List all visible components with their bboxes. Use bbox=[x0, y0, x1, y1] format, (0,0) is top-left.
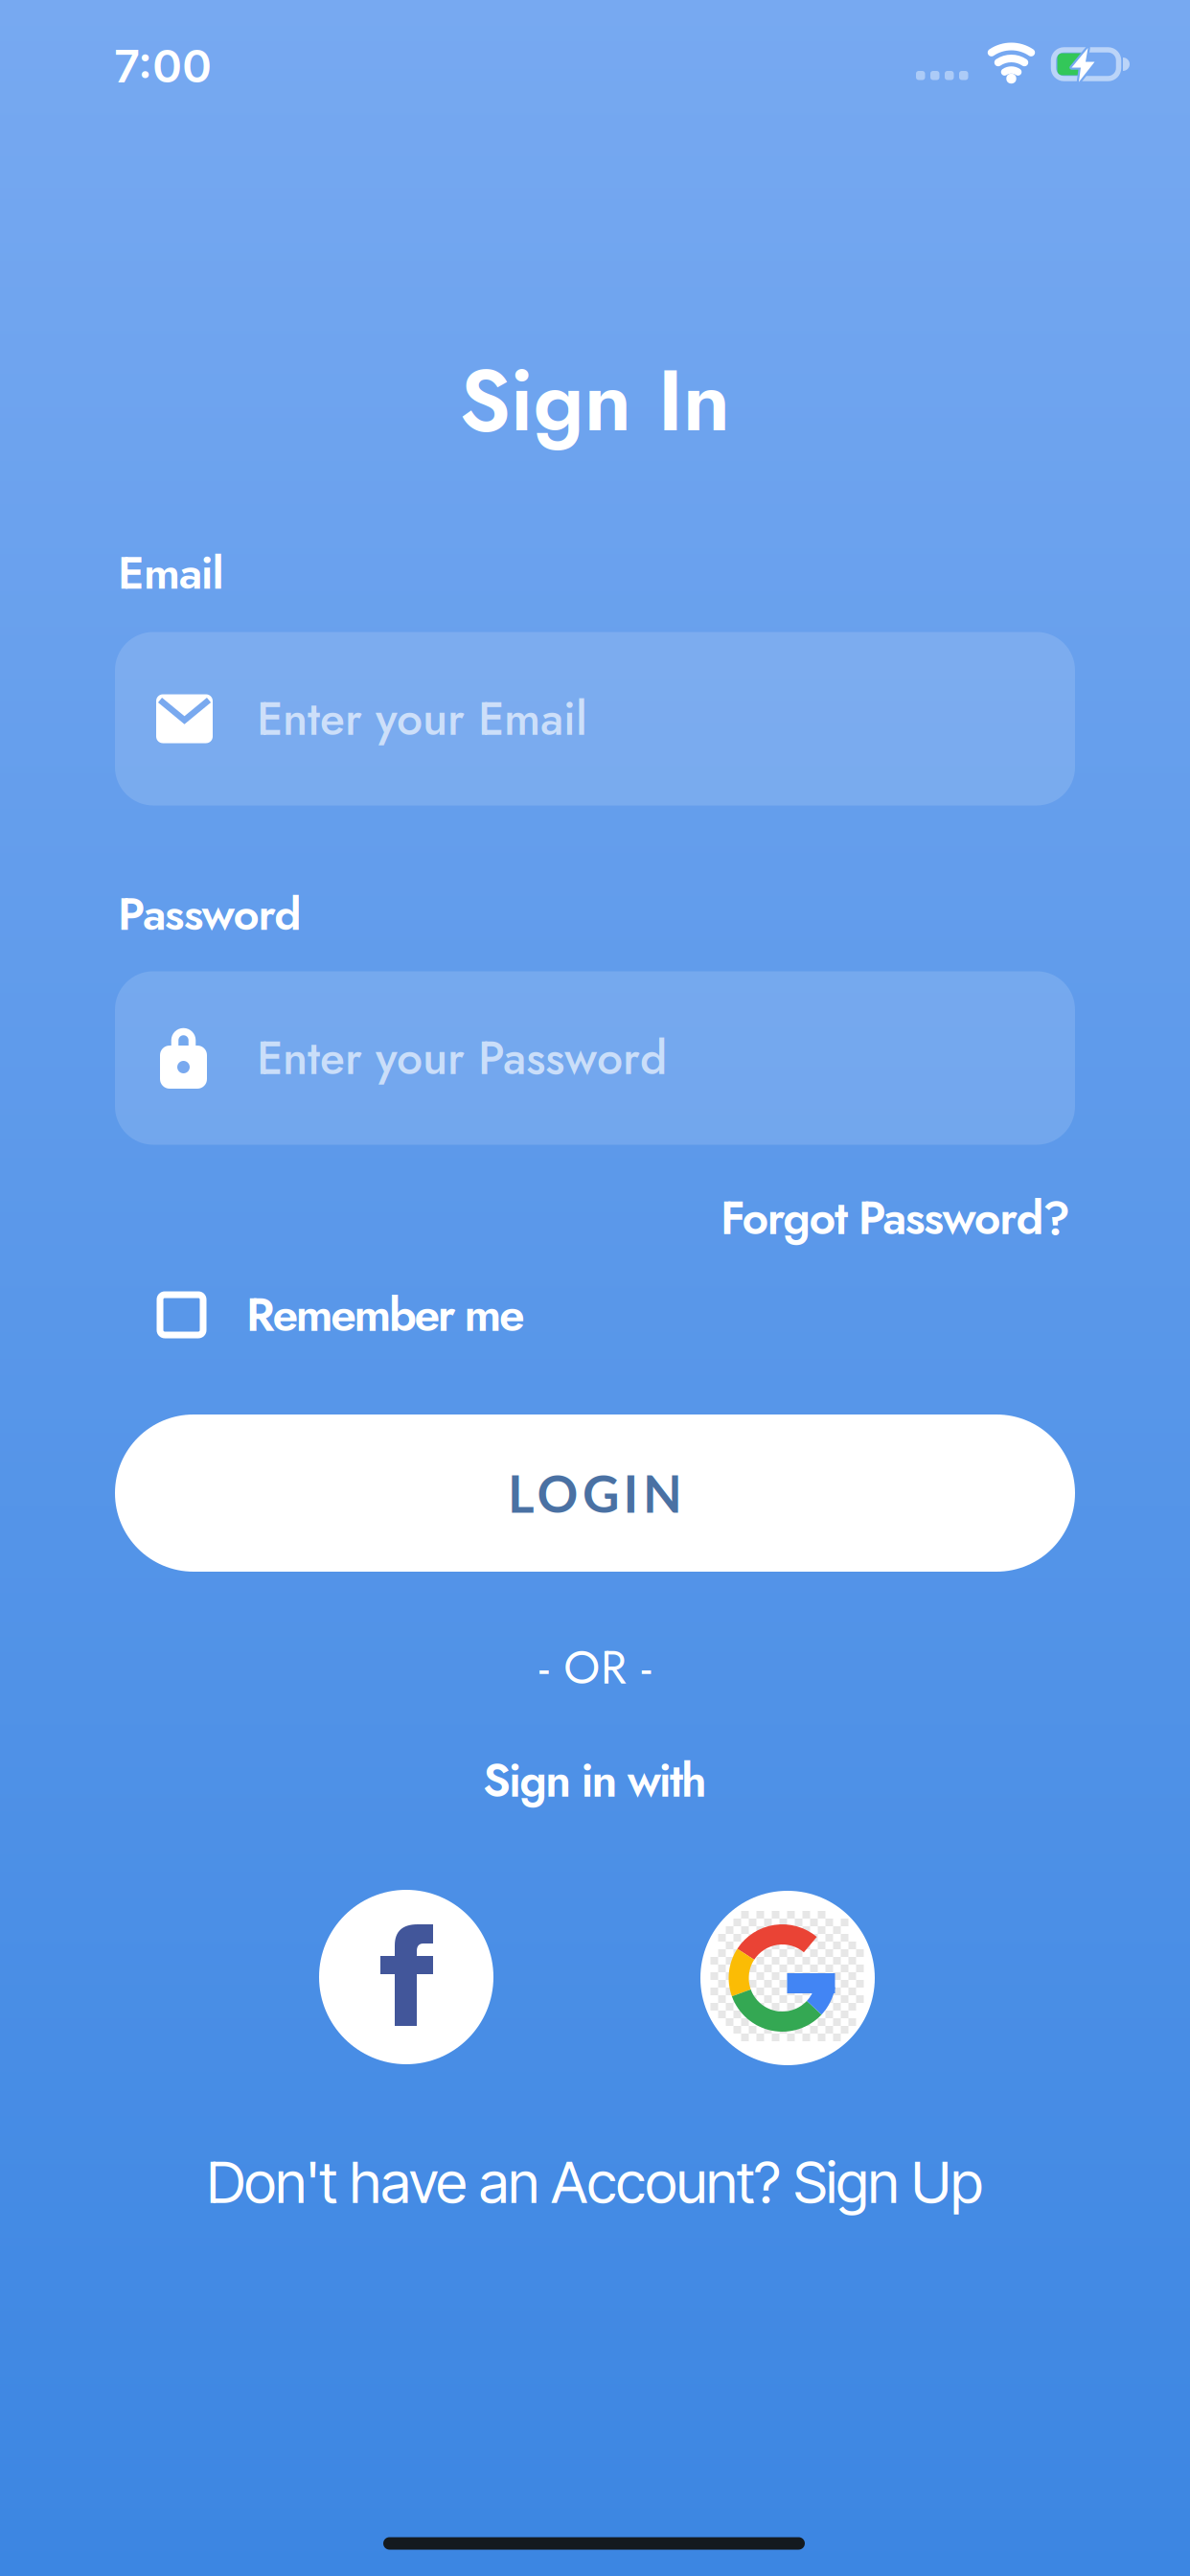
staticText: Enter your Password bbox=[257, 1025, 667, 1091]
staticText: - OR - bbox=[539, 1634, 651, 1701]
button[interactable]: Forgot Password? bbox=[721, 1185, 1070, 1251]
staticText: Sign in with bbox=[483, 1747, 707, 1814]
staticText: Remember me bbox=[246, 1282, 525, 1348]
staticText: LOGIN bbox=[508, 1463, 682, 1524]
button[interactable]: Don't have an Account? Sign Up bbox=[207, 2147, 983, 2217]
button[interactable]: Enter your Email bbox=[115, 632, 1075, 805]
button[interactable]: Sign in with Google bbox=[700, 1891, 875, 2065]
staticText: Password bbox=[118, 882, 301, 947]
button[interactable]: LOGIN bbox=[115, 1414, 1075, 1572]
staticText: Forgot Password? bbox=[721, 1185, 1070, 1251]
button[interactable]: Remember me bbox=[160, 1282, 525, 1348]
button[interactable]: Enter your Password bbox=[115, 971, 1075, 1145]
staticText: Enter your Email bbox=[257, 685, 587, 752]
staticText: Sign In bbox=[459, 339, 731, 462]
staticText: Email bbox=[118, 540, 224, 606]
staticText: 7:00 bbox=[114, 39, 212, 93]
button[interactable]: Sign in with Facebook bbox=[319, 1890, 493, 2064]
staticText: Don't have an Account? Sign Up bbox=[207, 2147, 983, 2217]
